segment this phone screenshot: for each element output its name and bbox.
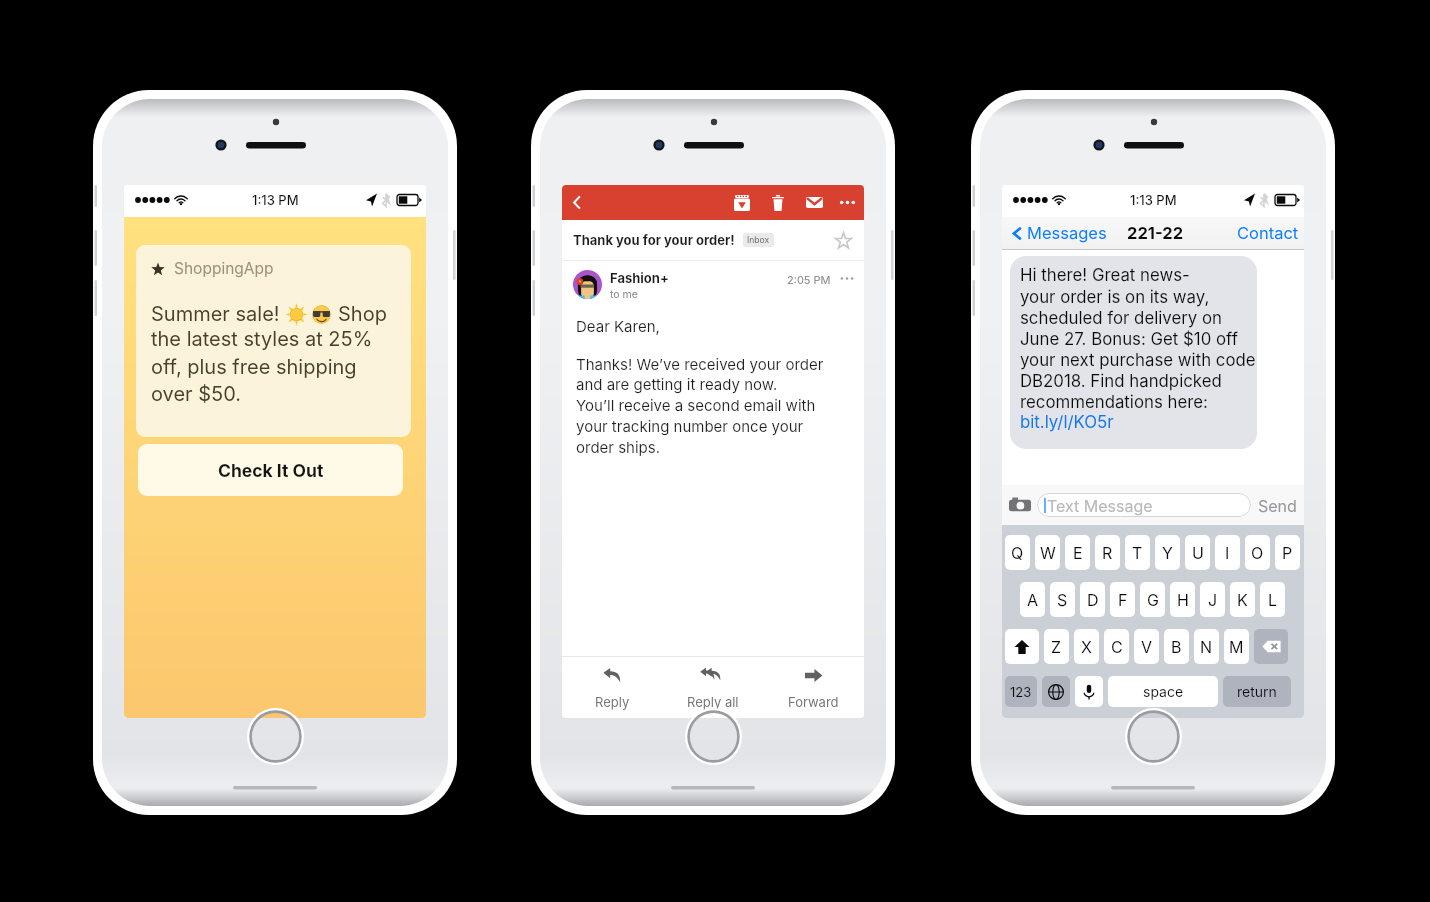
button[interactable]: Delete [760,185,796,220]
button[interactable]: Shift [1005,629,1039,664]
staticText: O [1251,543,1264,562]
button[interactable]: M [1224,629,1249,664]
staticText: E [1073,543,1083,562]
button[interactable]: Check It Out [138,444,403,496]
button[interactable]: D [1080,582,1105,617]
button[interactable]: F [1110,582,1135,617]
staticText: Messages [1027,223,1107,243]
staticText: Y [1162,543,1173,562]
staticText: to me [610,288,638,301]
button[interactable]: U [1185,535,1210,570]
button[interactable]: Camera [1008,493,1032,517]
staticText: 1:13 PM [252,192,299,208]
staticText: 123 [1010,684,1032,700]
button[interactable]: Send [1258,496,1297,515]
button[interactable]: Z [1044,629,1069,664]
staticText: Reply all [687,694,739,710]
button[interactable]: Contact [1237,223,1299,243]
staticText: Reply [595,694,630,710]
staticText: G [1147,590,1159,609]
staticText: Shop [338,302,387,326]
button[interactable]: Backspace [1254,629,1288,664]
button[interactable]: Reply all [662,657,763,718]
staticText: H [1177,590,1189,609]
staticText: L [1268,590,1278,609]
button[interactable]: S [1050,582,1075,617]
staticText: V [1141,637,1153,656]
staticText: Thank you for your order! [573,232,735,248]
staticText: Summer sale! [151,302,280,326]
button[interactable]: R [1095,535,1120,570]
staticText: F [1118,590,1128,609]
button[interactable]: Change language [1042,676,1070,707]
button[interactable]: Archive [724,185,760,220]
button[interactable]: Forward [763,657,864,718]
staticText: X [1081,637,1092,656]
button[interactable]: W [1035,535,1060,570]
button[interactable]: return [1223,676,1291,707]
staticText: W [1040,543,1056,562]
staticText: Thanks! We’ve received your order and ar… [576,355,824,457]
button[interactable]: ShoppingApp [136,245,411,437]
staticText: Text Message [1047,496,1153,515]
staticText: 2:05 PM [787,273,831,286]
button[interactable]: O [1245,535,1270,570]
button[interactable]: Text Message [1037,493,1251,517]
staticText: the latest styles at 25% off, plus free … [151,327,373,405]
staticText: N [1200,637,1213,656]
staticText: 1:13 PM [1130,192,1177,208]
staticText: T [1132,543,1143,562]
button[interactable]: Y [1155,535,1180,570]
staticText: Check It Out [218,460,324,481]
button[interactable]: X [1074,629,1099,664]
button[interactable]: Reply [562,657,662,718]
staticText: 221-22 [1127,223,1184,243]
button[interactable]: E [1065,535,1090,570]
staticText: Q [1011,543,1024,562]
button[interactable]: K [1230,582,1255,617]
button[interactable]: Q [1005,535,1030,570]
button[interactable]: More [839,273,855,286]
button[interactable]: C [1104,629,1129,664]
button[interactable]: Mark unread [796,185,832,220]
button[interactable]: G [1140,582,1165,617]
button[interactable]: Home [247,708,304,765]
button[interactable]: A [1020,582,1045,617]
button[interactable]: Dictation [1075,676,1103,707]
button[interactable]: bit.ly/l/KO5r [1020,412,1114,432]
staticText: Dear Karen, [576,317,660,335]
staticText: space [1143,683,1184,700]
button[interactable]: V [1134,629,1159,664]
button[interactable]: Home [1125,708,1182,765]
button[interactable]: J [1200,582,1225,617]
button[interactable]: More options [832,185,862,220]
staticText: K [1237,590,1248,609]
button[interactable]: Back [562,185,592,220]
staticText: I [1225,543,1230,562]
staticText: Inbox [747,235,770,245]
staticText: R [1102,543,1113,562]
staticText: D [1087,590,1099,609]
button[interactable]: T [1125,535,1150,570]
button[interactable]: L [1260,582,1285,617]
button[interactable]: Star [831,228,855,252]
staticText: S [1057,590,1068,609]
staticText: B [1171,637,1182,656]
staticText: C [1111,637,1123,656]
staticText: Z [1051,637,1062,656]
staticText: Forward [788,694,839,710]
button[interactable]: P [1275,535,1300,570]
button[interactable]: Home [685,708,742,765]
button[interactable]: N [1194,629,1219,664]
staticText: M [1229,637,1244,656]
button[interactable]: Messages [1010,223,1107,243]
button[interactable]: B [1164,629,1189,664]
button[interactable]: 123 [1005,676,1037,707]
staticText: ShoppingApp [174,259,274,278]
button[interactable]: H [1170,582,1195,617]
button[interactable]: I [1215,535,1240,570]
staticText: Hi there! Great news- your order is on i… [1020,265,1255,412]
staticText: Fashion+ [610,270,669,286]
staticText: P [1282,543,1293,562]
button[interactable]: space [1108,676,1218,707]
